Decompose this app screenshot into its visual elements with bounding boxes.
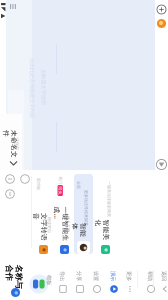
staticText: 智能体 (72, 222, 86, 238)
button[interactable]: Account (155, 17, 168, 30)
staticText: 全新 (74, 182, 82, 187)
button[interactable]: 导出 (57, 258, 69, 294)
staticText: 限免 (56, 188, 64, 193)
staticText: 热门 (56, 178, 64, 183)
staticText: 已保存 (11, 141, 23, 146)
staticText: 更多玩法等你来探索 (68, 205, 104, 210)
staticText: 未命名文件 (0, 136, 24, 152)
staticText: 朗读更自然 (39, 220, 55, 230)
button[interactable]: 全新 (74, 174, 93, 254)
button[interactable]: Regenerate (19, 173, 31, 185)
staticText: 导出 (57, 273, 67, 279)
staticText: 智能美化 (91, 222, 112, 238)
staticText: 名称与合作 (2, 267, 26, 287)
staticText: 新功能 (32, 181, 44, 186)
staticText: 帮助 (145, 273, 155, 279)
staticText: 副标题文字说明 (26, 84, 61, 90)
staticText: 更多 (124, 273, 134, 279)
button[interactable] (29, 258, 49, 294)
staticText: 文字转语音 (26, 219, 54, 235)
button[interactable]: Beautify (4, 188, 16, 200)
button[interactable]: Present (155, 158, 168, 171)
staticText: 输入主题 (60, 221, 76, 226)
staticText: 一键美化排版更精美 (91, 196, 127, 201)
button[interactable]: 演示 (108, 258, 120, 294)
button[interactable]: 设置 (91, 258, 103, 294)
button[interactable]: 一键美化排版更精美 (96, 172, 116, 256)
button[interactable]: 热门 (55, 172, 75, 256)
staticText: 分享 (74, 273, 84, 279)
staticText: 模板 (44, 277, 54, 283)
staticText: 点击此处添加标题文字内容 (2, 85, 62, 91)
button[interactable]: 更多 (124, 258, 136, 294)
button[interactable]: AI assistant (4, 173, 16, 185)
staticText: 设置 (91, 273, 101, 279)
button[interactable]: Add slide (155, 3, 168, 16)
button[interactable]: 返回 (159, 258, 168, 294)
button[interactable]: Collapse panel (7, 158, 20, 169)
staticText: 一键智能生成… (43, 215, 78, 232)
button[interactable]: 帮助 (145, 258, 157, 294)
staticText: 返回 (159, 273, 168, 279)
button[interactable]: 分享 (74, 258, 86, 294)
button[interactable]: 新功能 (34, 172, 54, 256)
staticText: 演示 (108, 273, 118, 279)
